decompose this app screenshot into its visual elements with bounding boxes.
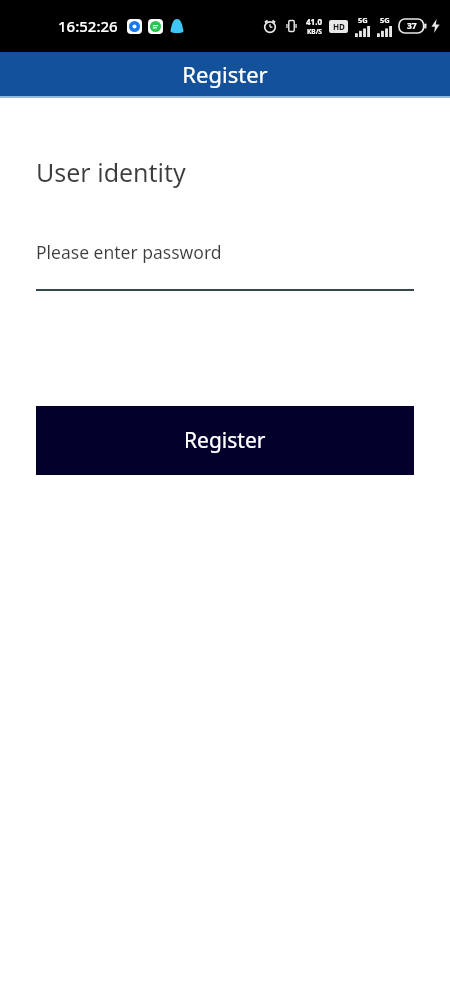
button[interactable]: Register xyxy=(36,406,414,475)
staticText: 41.0 xyxy=(306,16,322,27)
staticText: 37 xyxy=(407,20,417,32)
staticText: 5G xyxy=(380,15,390,25)
staticText: Register xyxy=(182,59,268,89)
staticText: 16:52:26 xyxy=(58,16,118,36)
staticText: Please enter password xyxy=(36,240,222,264)
staticText: 5G xyxy=(358,15,368,25)
staticText: User identity xyxy=(36,155,186,189)
staticText: KB/S xyxy=(307,27,322,36)
staticText: HD xyxy=(333,21,345,32)
staticText: Register xyxy=(184,426,266,455)
